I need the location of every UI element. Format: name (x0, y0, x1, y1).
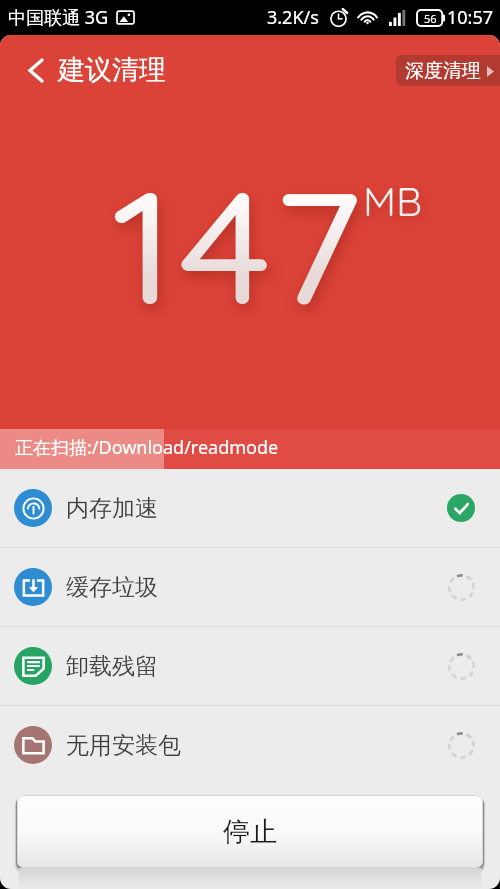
staticText: 缓存垃圾 (66, 573, 158, 602)
staticText: 正在扫描:/Download/readmode (15, 435, 279, 460)
staticText: 10:57 (447, 5, 494, 30)
button[interactable]: 缓存垃圾 (0, 548, 500, 626)
staticText: 建议清理 (58, 53, 166, 87)
button[interactable]: 深度清理 (396, 55, 500, 86)
button[interactable]: Back (28, 35, 56, 105)
button[interactable]: 停止 (17, 795, 483, 868)
staticText: 深度清理 (405, 59, 481, 83)
staticText: 内存加速 (66, 494, 158, 523)
button[interactable]: 无用安装包 (0, 706, 500, 784)
staticText: 中国联通 3G (8, 5, 109, 30)
staticText: MB (363, 176, 423, 226)
button[interactable]: 卸载残留 (0, 627, 500, 705)
staticText: 卸载残留 (66, 652, 158, 681)
button[interactable]: 内存加速 (0, 469, 500, 547)
staticText: 无用安装包 (66, 731, 181, 760)
staticText: 56 (424, 11, 437, 26)
staticText: 停止 (223, 815, 277, 849)
staticText: 3.2K/s (267, 5, 319, 30)
staticText: 147 (111, 146, 369, 316)
